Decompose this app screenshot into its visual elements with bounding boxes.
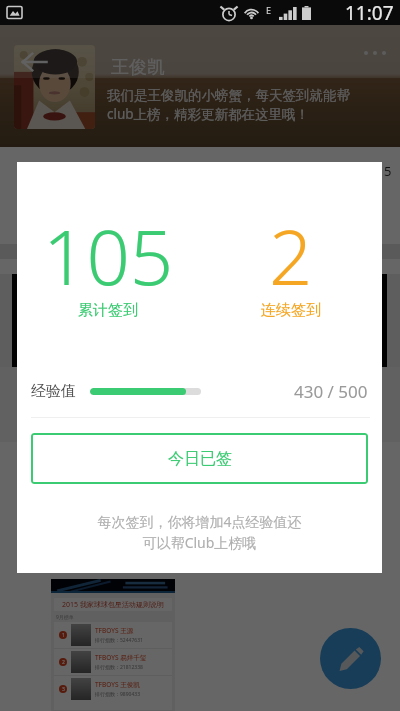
staticText: 1	[62, 632, 65, 639]
staticText: 连续签到	[261, 301, 321, 320]
button[interactable]: Club avatar	[14, 45, 95, 129]
staticText: 2015 我家球球包星活动规则说明	[62, 600, 164, 610]
staticText: 2	[62, 659, 65, 666]
staticText: TFBOYS 王俊凯	[95, 680, 140, 689]
button[interactable]: 活动	[200, 147, 297, 195]
staticText: 排行指数：21812338	[95, 664, 143, 671]
button[interactable]: Compose post	[320, 628, 381, 689]
staticText: 2	[269, 204, 313, 308]
button[interactable]: 排行	[103, 147, 200, 195]
button[interactable]: 成员	[297, 147, 394, 195]
staticText: 5	[384, 162, 392, 180]
staticText: 每次签到，你将增加4点经验值还 可以帮Club上榜哦	[17, 512, 382, 552]
staticText: 105	[43, 204, 174, 308]
button[interactable]: More options	[360, 47, 390, 59]
button[interactable]: Back	[20, 48, 48, 76]
staticText: 排行指数：52447631	[95, 637, 143, 644]
staticText: 我们是王俊凯的小螃蟹，每天签到就能帮 club上榜，精彩更新都在这里哦！	[107, 87, 350, 123]
staticText: 9月榜单	[56, 614, 74, 621]
staticText: 11:07	[345, 0, 394, 25]
button[interactable]: 广场	[6, 147, 103, 195]
staticText: 3	[62, 686, 65, 693]
staticText: TFBOYS 王源	[95, 626, 134, 635]
staticText: 430 / 500	[294, 380, 368, 403]
staticText: 累计签到	[78, 301, 138, 320]
button[interactable]: 今日已签	[31, 433, 368, 484]
staticText: 今日已签	[168, 449, 232, 469]
staticText: 王俊凯	[111, 56, 165, 79]
staticText: E	[266, 4, 272, 16]
staticText: TFBOYS 易烊千玺	[95, 653, 147, 662]
staticText: 经验值	[31, 382, 76, 401]
staticText: 排行指数：9890433	[95, 691, 141, 698]
